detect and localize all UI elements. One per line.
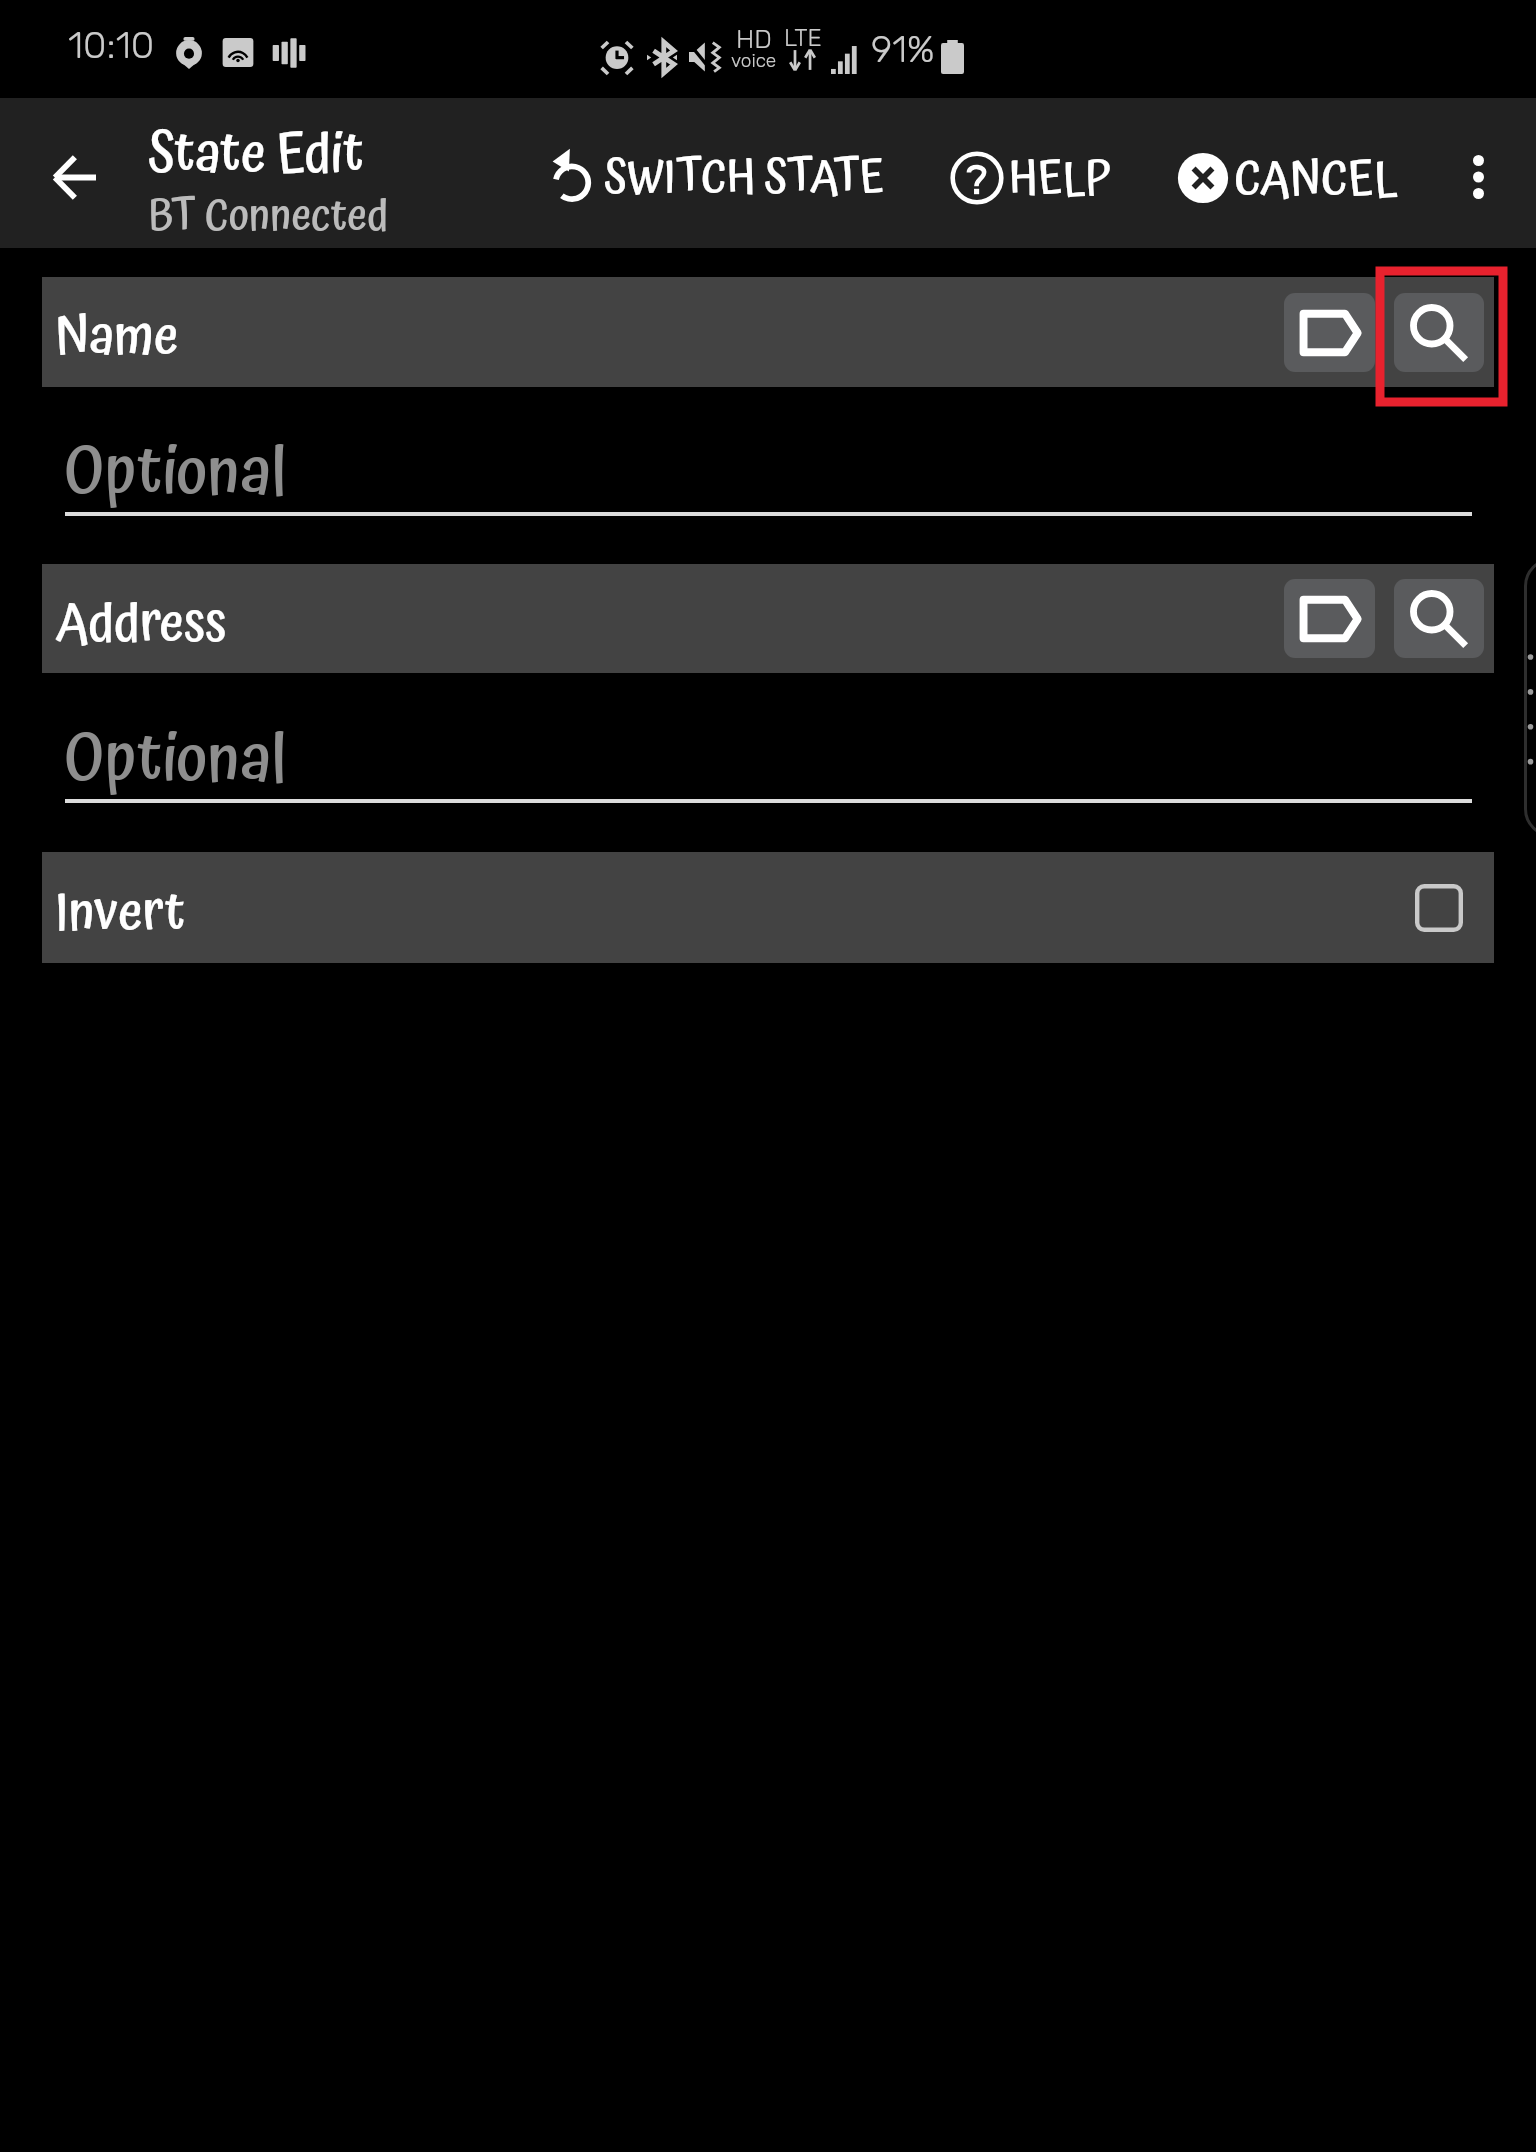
staticText: CANCEL <box>1234 141 1398 219</box>
staticText: LTE <box>784 24 822 52</box>
staticText: SWITCH STATE <box>604 141 885 215</box>
button[interactable]: Address <box>42 564 1494 673</box>
button[interactable]: Name <box>42 277 1494 387</box>
staticText: HD <box>736 24 772 55</box>
button[interactable]: More options <box>1431 130 1525 224</box>
staticText: voice <box>731 49 777 72</box>
button[interactable]: HELP <box>950 143 1112 231</box>
staticText: 91% <box>871 27 935 71</box>
staticText: HELP <box>1009 142 1112 216</box>
staticText: 10:10 <box>68 22 155 67</box>
button[interactable]: Search <box>1394 579 1484 658</box>
button[interactable]: CANCEL <box>1176 143 1398 231</box>
button[interactable]: Invert checkbox <box>1403 872 1475 944</box>
staticText: Optional <box>64 420 287 527</box>
staticText: Invert <box>55 871 186 957</box>
button[interactable]: Insert variable <box>1284 293 1375 372</box>
staticText: Optional <box>64 707 287 814</box>
staticText: BT Connected <box>148 183 389 253</box>
button[interactable]: Invert <box>42 852 1494 963</box>
button[interactable]: Navigate up <box>27 130 121 224</box>
staticText: State Edit <box>148 112 364 199</box>
staticText: Name <box>55 295 179 381</box>
staticText: Address <box>55 582 227 668</box>
button[interactable]: Insert variable <box>1284 579 1375 658</box>
button[interactable]: SWITCH STATE <box>548 141 885 229</box>
button[interactable]: Search <box>1394 293 1484 372</box>
